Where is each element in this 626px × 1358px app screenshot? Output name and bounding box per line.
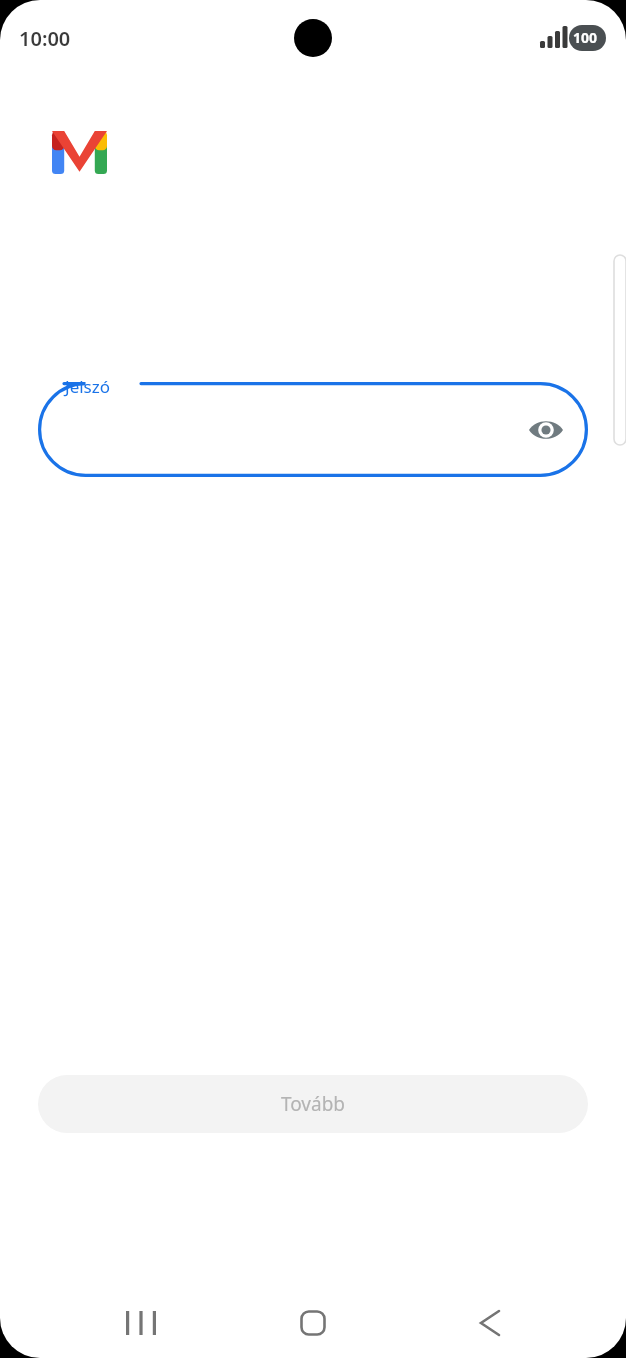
button[interactable]: Tovább (38, 1075, 588, 1133)
button[interactable]: Home (272, 1298, 354, 1348)
staticText: 10:00 (19, 25, 71, 52)
button[interactable]: Recents (100, 1298, 182, 1348)
staticText: Jelszó (65, 375, 111, 398)
button[interactable]: Show password (522, 406, 570, 454)
button[interactable]: Back (449, 1298, 531, 1348)
button[interactable] (38, 382, 588, 477)
staticText: 100 (573, 28, 598, 47)
staticText: Tovább (281, 1091, 346, 1117)
